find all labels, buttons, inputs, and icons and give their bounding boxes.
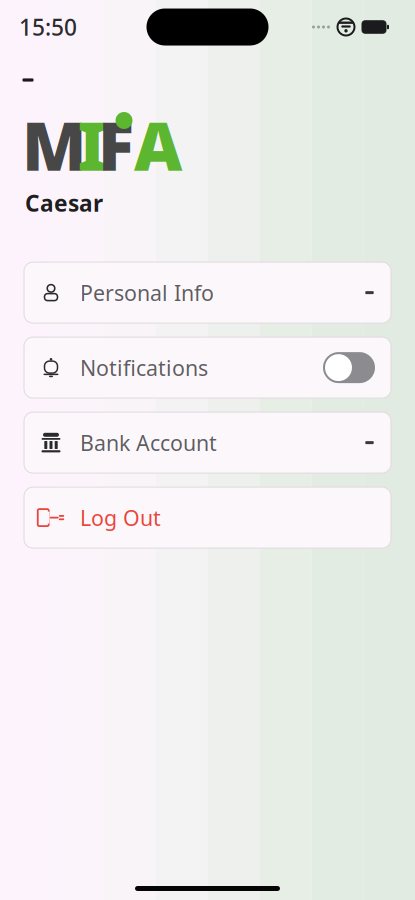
staticText: 15:50 xyxy=(19,12,77,42)
button[interactable]: Notifications xyxy=(24,337,391,398)
staticText: Bank Account xyxy=(80,428,217,457)
staticText: Personal Info xyxy=(80,278,214,307)
staticText: Notifications xyxy=(80,353,208,382)
staticText: I xyxy=(77,101,106,189)
button[interactable]: Log Out xyxy=(24,487,391,548)
button[interactable]: Personal Info xyxy=(24,262,391,323)
staticText: M xyxy=(22,101,86,189)
staticText: A xyxy=(134,101,182,189)
button[interactable]: Bank Account xyxy=(24,412,391,473)
staticText: Caesar xyxy=(25,188,103,218)
staticText: Log Out xyxy=(80,503,161,532)
staticText: F xyxy=(98,101,134,189)
button[interactable]: Back xyxy=(6,58,50,102)
